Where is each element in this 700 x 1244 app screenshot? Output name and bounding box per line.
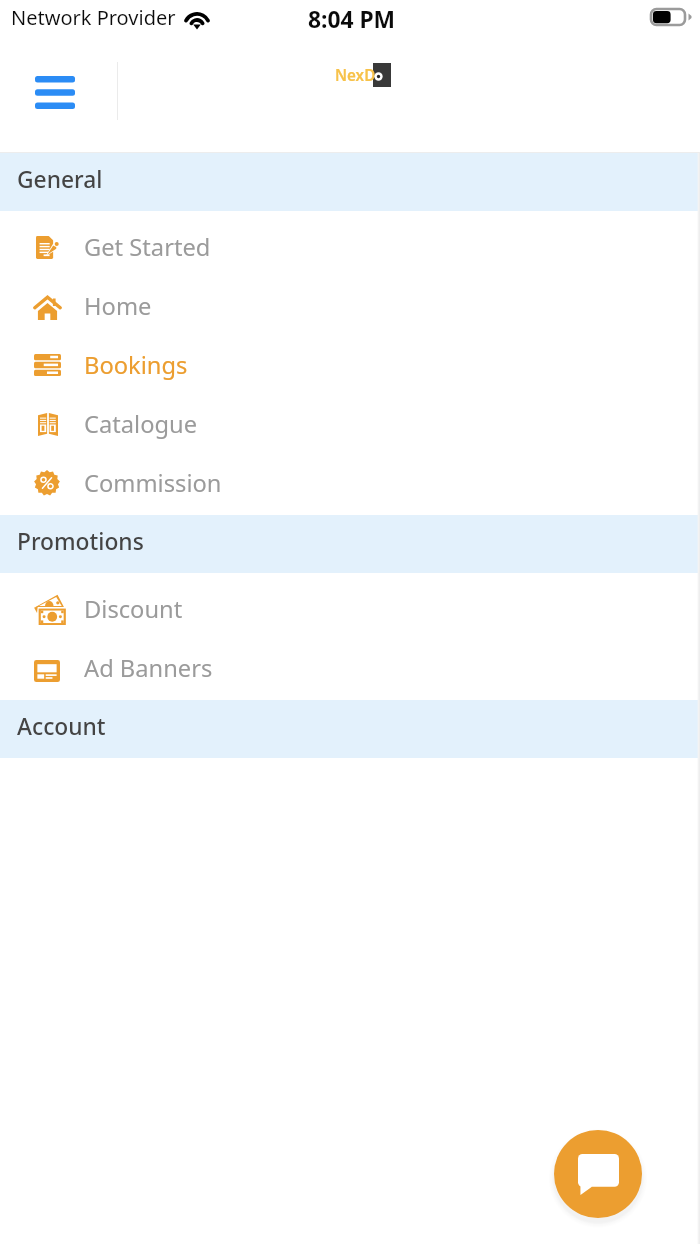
- staticText: Bookings: [84, 349, 188, 381]
- button[interactable]: Menu: [24, 68, 86, 116]
- staticText: Account: [17, 711, 106, 742]
- button[interactable]: Home: [0, 276, 700, 335]
- staticText: Get Started: [84, 231, 211, 263]
- button[interactable]: Chat: [554, 1130, 642, 1218]
- button[interactable]: Catalogue: [0, 394, 700, 453]
- button[interactable]: Get Started: [0, 217, 700, 276]
- staticText: Catalogue: [84, 408, 198, 440]
- staticText: Commission: [84, 467, 222, 499]
- button[interactable]: Bookings: [0, 335, 700, 394]
- button[interactable]: Ad Banners: [0, 638, 700, 697]
- staticText: Discount: [84, 593, 183, 625]
- staticText: Home: [84, 290, 152, 322]
- button[interactable]: Discount: [0, 579, 700, 638]
- staticText: NexD: [335, 65, 376, 86]
- staticText: Promotions: [17, 526, 144, 557]
- staticText: General: [17, 164, 103, 195]
- button[interactable]: Commission: [0, 453, 700, 512]
- staticText: Ad Banners: [84, 652, 213, 684]
- staticText: Network Provider: [11, 4, 176, 31]
- staticText: 8:04 PM: [308, 4, 396, 35]
